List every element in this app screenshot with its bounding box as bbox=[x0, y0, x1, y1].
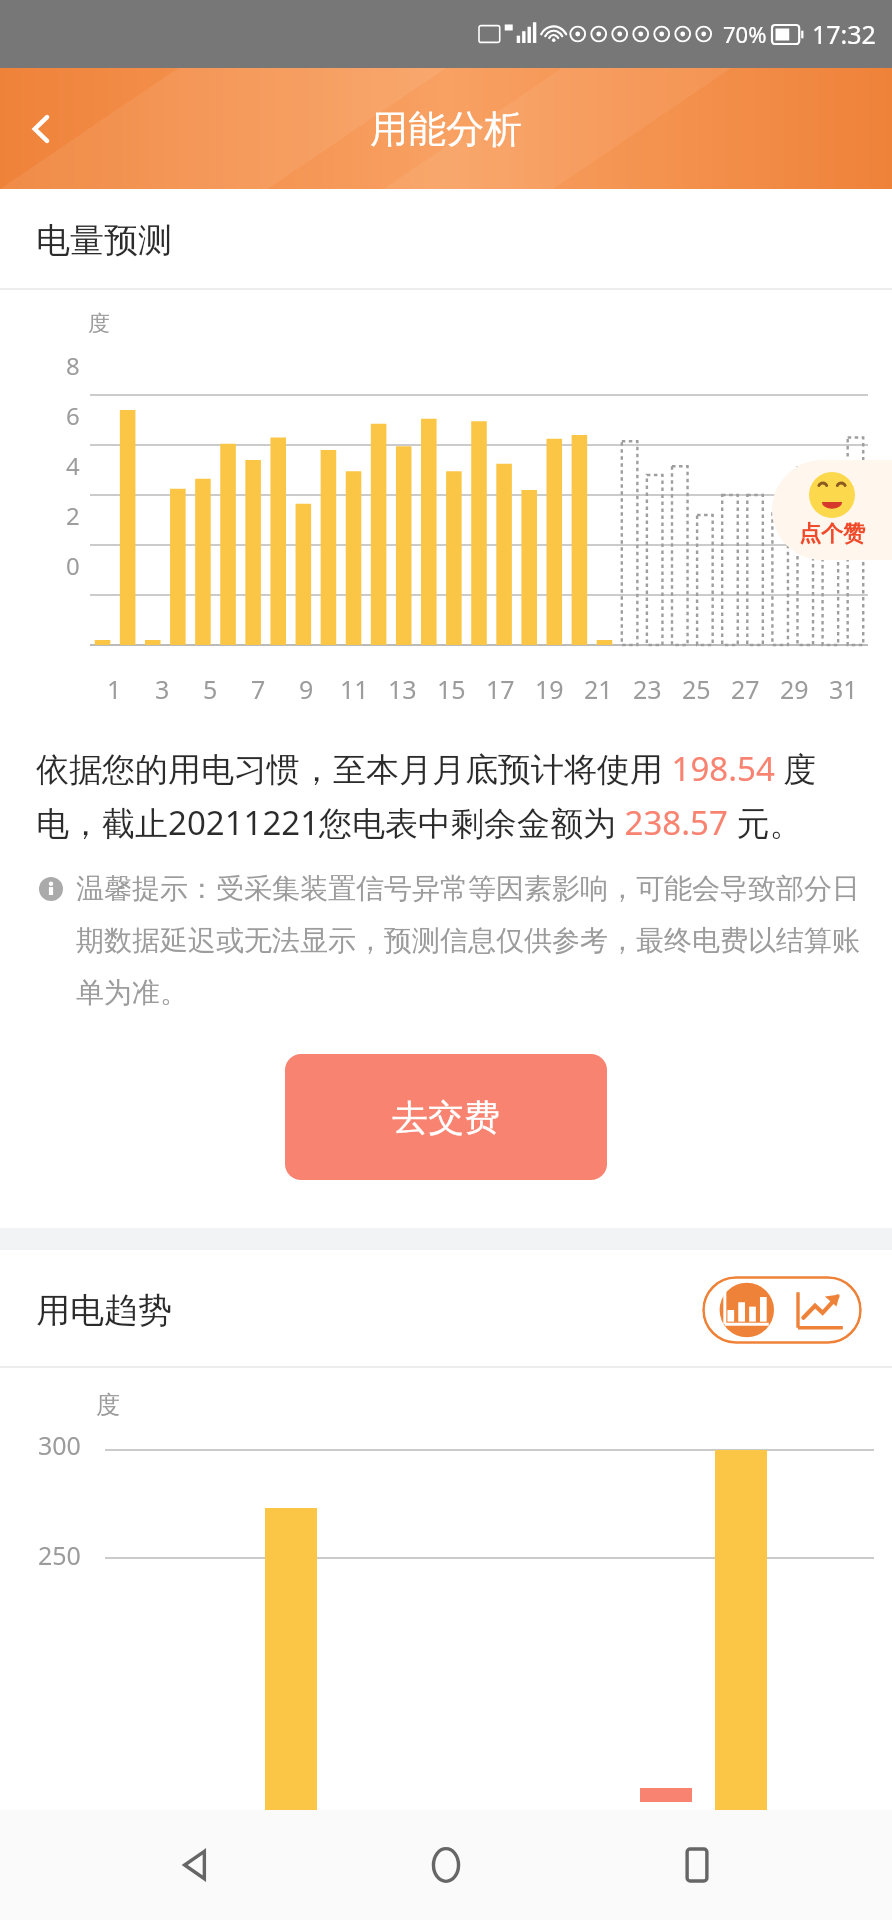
staticText: 25 bbox=[682, 672, 711, 706]
button[interactable]: Back bbox=[10, 97, 74, 161]
staticText: 27 bbox=[731, 672, 760, 706]
staticText: 13 bbox=[388, 672, 417, 706]
staticText: 7 bbox=[251, 672, 266, 706]
staticText: 300 bbox=[38, 1428, 81, 1462]
staticText: 11 bbox=[340, 672, 369, 706]
button[interactable]: Back bbox=[141, 1810, 251, 1920]
staticText: 8 bbox=[66, 349, 80, 382]
staticText: 0 bbox=[66, 549, 80, 582]
staticText: 6 bbox=[66, 399, 80, 432]
button[interactable]: Home bbox=[391, 1810, 501, 1920]
staticText: 1 bbox=[107, 672, 122, 706]
staticText: 用电趋势 bbox=[36, 1289, 172, 1332]
button[interactable]: Toggle chart type bbox=[702, 1276, 862, 1344]
staticText: 29 bbox=[780, 672, 809, 706]
staticText: 5 bbox=[203, 672, 218, 706]
staticText: 21 bbox=[584, 672, 613, 706]
staticText: 2 bbox=[66, 499, 80, 532]
staticText: 19 bbox=[535, 672, 564, 706]
staticText: 依据您的用电习惯，至本月月底预计将使用 198.54 度电，截止20211221… bbox=[36, 746, 856, 845]
staticText: 31 bbox=[829, 672, 858, 706]
staticText: 电量预测 bbox=[36, 219, 172, 262]
staticText: 温馨提示：受采集装置信号异常等因素影响，可能会导致部分日期数据延迟或无法显示，预… bbox=[76, 871, 862, 1010]
staticText: 17:32 bbox=[812, 17, 876, 51]
button[interactable]: 去交费 bbox=[285, 1054, 607, 1180]
staticText: 3 bbox=[155, 672, 170, 706]
staticText: 17 bbox=[486, 672, 515, 706]
staticText: 70% bbox=[723, 19, 767, 49]
staticText: 点个赞 bbox=[799, 520, 865, 548]
staticText: 23 bbox=[633, 672, 662, 706]
button[interactable]: Recent apps bbox=[642, 1810, 752, 1920]
staticText: 4 bbox=[66, 449, 80, 482]
staticText: 250 bbox=[38, 1538, 81, 1572]
staticText: 15 bbox=[437, 672, 466, 706]
staticText: 用能分析 bbox=[370, 105, 522, 153]
button[interactable]: Like bbox=[772, 460, 892, 560]
staticText: 度 bbox=[88, 310, 110, 338]
staticText: 去交费 bbox=[392, 1095, 500, 1140]
staticText: 9 bbox=[299, 672, 314, 706]
staticText: 度 bbox=[96, 1390, 120, 1420]
